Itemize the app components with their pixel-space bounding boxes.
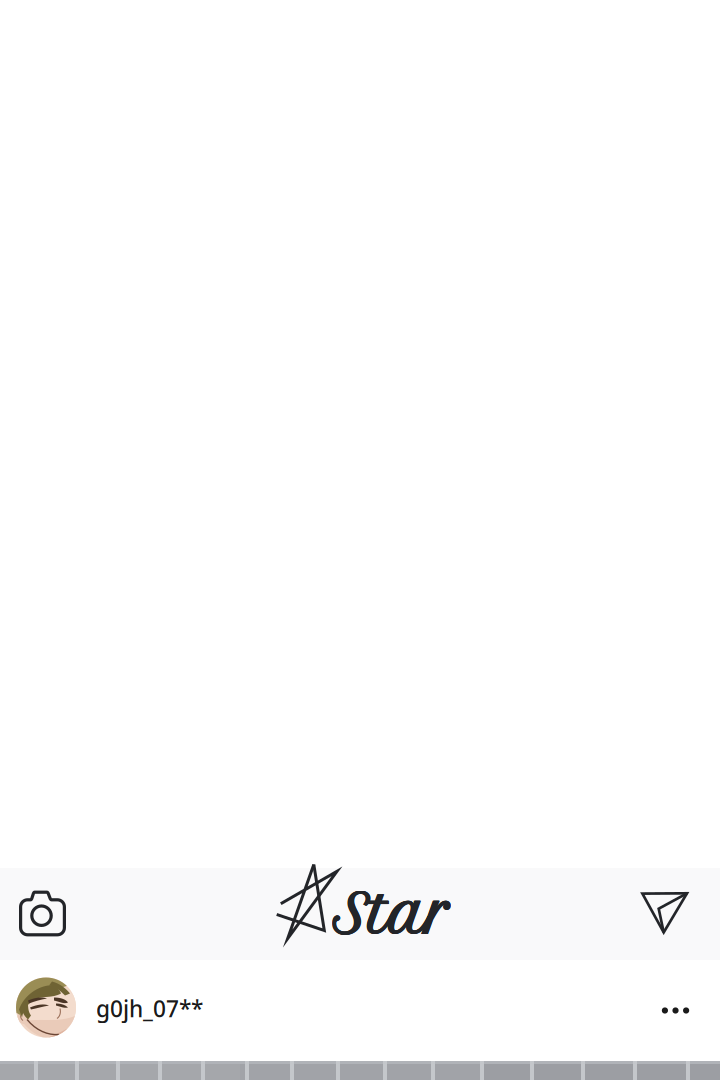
button[interactable]: Star bbox=[260, 873, 457, 955]
button[interactable]: g0jh_07** bbox=[0, 962, 203, 1058]
staticText: Star bbox=[332, 882, 451, 947]
staticText: Star bbox=[332, 882, 451, 947]
button[interactable]: More options bbox=[631, 979, 720, 1042]
button[interactable]: Camera bbox=[0, 867, 88, 960]
button[interactable]: Direct messages bbox=[617, 868, 720, 960]
staticText: Star bbox=[333, 882, 452, 947]
staticText: g0jh_07** bbox=[96, 993, 203, 1023]
staticText: Star bbox=[332, 882, 451, 947]
